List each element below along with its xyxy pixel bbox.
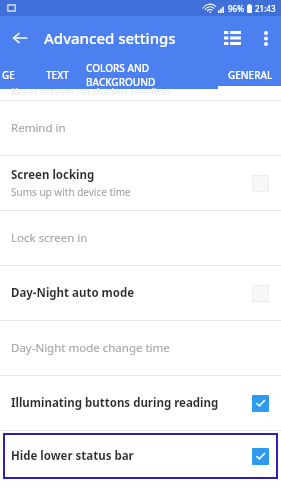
staticText: Day-Night auto mode [11, 285, 135, 301]
button[interactable]: Illuminating buttons during reading [0, 376, 281, 430]
staticText: Lock screen in [11, 230, 88, 246]
button[interactable]: More options [251, 23, 281, 53]
button[interactable]: TEXT [28, 60, 86, 89]
staticText: Screen locking [11, 167, 95, 183]
button[interactable]: Day-Night auto mode [0, 266, 281, 320]
button[interactable]: Day-Night mode change time [0, 321, 281, 375]
button[interactable]: Back [0, 18, 40, 58]
staticText: COLORS AND BACKGROUND [86, 61, 219, 89]
staticText: Sums up with device time [11, 185, 131, 199]
button[interactable]: View list [213, 19, 251, 57]
button[interactable]: GE [0, 60, 28, 89]
staticText: Advanced settings [44, 28, 176, 48]
staticText: Remind in [11, 120, 66, 136]
staticText: 96% [228, 3, 244, 14]
button[interactable]: Remind in [0, 101, 281, 155]
staticText: Hide lower status bar [11, 448, 134, 464]
staticText: Day-Night mode change time [11, 340, 170, 356]
staticText: GENERAL [228, 68, 273, 82]
button[interactable]: Lock screen in [0, 211, 281, 265]
staticText: GE [2, 68, 15, 82]
staticText: 21:43 [255, 3, 276, 14]
button[interactable]: COLORS AND BACKGROUND [86, 60, 219, 89]
button[interactable]: Hide lower status bar [3, 433, 278, 479]
button[interactable]: Screen locking [0, 156, 281, 210]
staticText: Keep screen on during reading [11, 84, 171, 95]
staticText: TEXT [46, 68, 69, 82]
staticText: Illuminating buttons during reading [11, 395, 219, 411]
button[interactable]: GENERAL [219, 60, 281, 89]
button[interactable]: Keep screen on during reading [0, 89, 281, 100]
